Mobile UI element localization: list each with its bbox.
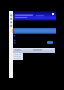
button[interactable] <box>13 48 55 53</box>
button[interactable] <box>13 28 56 34</box>
button[interactable] <box>13 53 23 60</box>
button[interactable] <box>9 11 13 78</box>
button[interactable]: Add <box>47 41 53 44</box>
button[interactable] <box>13 11 56 21</box>
